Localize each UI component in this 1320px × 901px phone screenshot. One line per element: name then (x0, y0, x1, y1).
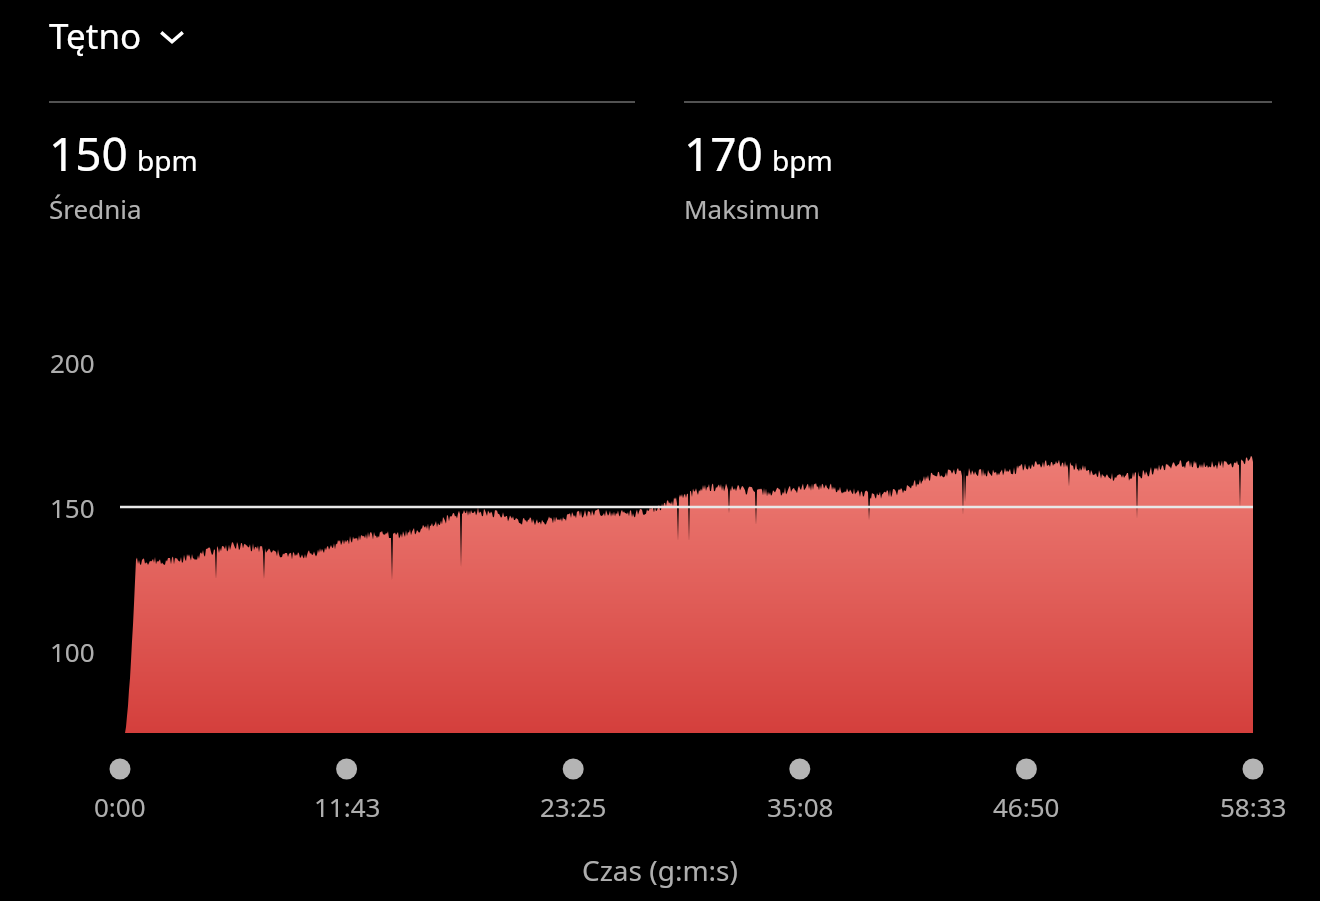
staticText: Czas (g:m:s) (582, 851, 738, 889)
staticText: bpm (772, 141, 833, 179)
staticText: 11:43 (314, 789, 381, 824)
staticText: 0:00 (94, 789, 146, 824)
staticText: 58:33 (1220, 789, 1287, 824)
button[interactable]: 170 (684, 101, 1272, 226)
staticText: 150 (49, 122, 128, 185)
staticText: 46:50 (993, 789, 1060, 824)
staticText: Średnia (49, 191, 142, 226)
staticText: 35:08 (767, 789, 834, 824)
staticText: 150 (50, 490, 95, 525)
other: Rozwiń (154, 18, 190, 54)
button[interactable]: 150 (49, 101, 635, 226)
staticText: bpm (137, 141, 198, 179)
button[interactable]: Tętno (49, 12, 190, 60)
staticText: Maksimum (684, 191, 820, 226)
staticText: Tętno (49, 12, 142, 60)
staticText: 100 (50, 634, 95, 669)
staticText: 23:25 (540, 789, 607, 824)
staticText: 170 (684, 122, 763, 185)
staticText: 200 (50, 345, 95, 380)
